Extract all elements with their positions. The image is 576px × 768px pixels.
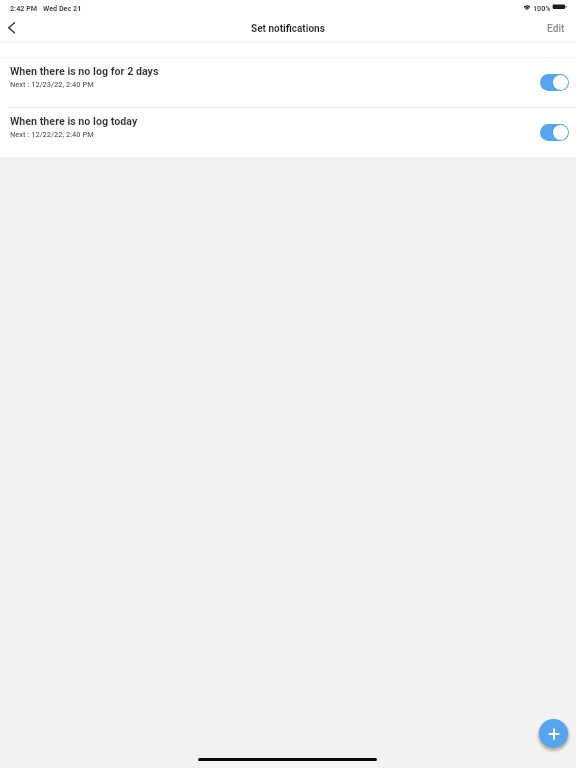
button[interactable]: Toggle notification <box>540 74 569 91</box>
staticText: Next : 12/23/22, 2:40 PM <box>10 80 94 89</box>
staticText: 2:42 PM <box>10 4 38 12</box>
button[interactable]: When there is no log today <box>0 107 576 157</box>
staticText: When there is no log today <box>10 115 138 128</box>
staticText: Wed Dec 21 <box>43 4 82 12</box>
staticText: Set notifications <box>251 23 325 35</box>
button[interactable]: Back <box>2 20 22 41</box>
button[interactable]: Edit <box>547 20 565 41</box>
staticText: Next : 12/22/22, 2:40 PM <box>10 130 94 139</box>
staticText: When there is no log for 2 days <box>10 65 159 78</box>
button[interactable]: Add notification <box>539 719 568 748</box>
button[interactable]: Toggle notification <box>540 124 569 141</box>
staticText: 100% <box>533 4 551 12</box>
button[interactable]: When there is no log for 2 days <box>0 57 576 107</box>
staticText: Edit <box>547 23 565 35</box>
